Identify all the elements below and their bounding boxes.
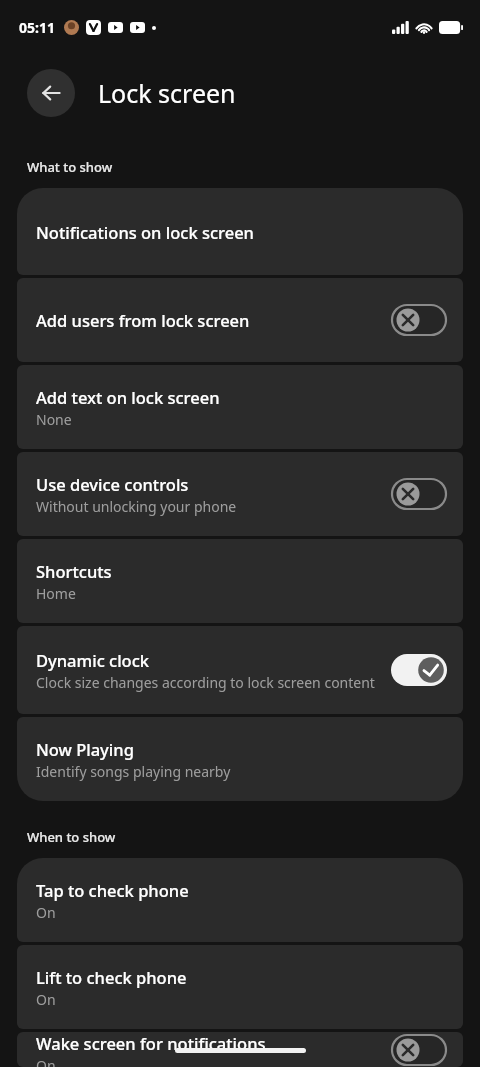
staticText: Home <box>36 584 76 603</box>
staticText: Lock screen <box>98 76 236 110</box>
staticText: Shortcuts <box>36 560 112 582</box>
staticText: Add users from lock screen <box>36 309 250 331</box>
button[interactable]: Use device controls <box>17 452 463 536</box>
button[interactable]: Add users from lock screen <box>17 278 463 362</box>
staticText: What to show <box>27 158 113 176</box>
staticText: Lift to check phone <box>36 966 187 988</box>
staticText: 05:11 <box>19 18 55 37</box>
button[interactable]: Lift to check phone <box>17 945 463 1029</box>
button[interactable]: Tap to check phone <box>17 858 463 942</box>
button[interactable]: Dynamic clock <box>17 626 463 714</box>
button[interactable]: Wake screen for notifications <box>17 1032 463 1067</box>
staticText: Use device controls <box>36 473 189 495</box>
staticText: On <box>36 990 56 1009</box>
button[interactable]: Add text on lock screen <box>17 365 463 449</box>
staticText: Dynamic clock <box>36 649 149 671</box>
button[interactable]: Shortcuts <box>17 539 463 623</box>
staticText: On <box>36 1056 56 1067</box>
staticText: Notifications on lock screen <box>36 221 254 243</box>
staticText: Tap to check phone <box>36 879 189 901</box>
staticText: Identify songs playing nearby <box>36 762 231 781</box>
button[interactable]: Notifications on lock screen <box>17 188 463 275</box>
staticText: Add text on lock screen <box>36 386 220 408</box>
button[interactable]: Back <box>27 69 75 117</box>
staticText: When to show <box>27 828 116 846</box>
staticText: Clock size changes according to lock scr… <box>36 673 375 692</box>
staticText: Wake screen for notifications <box>36 1032 266 1054</box>
staticText: Without unlocking your phone <box>36 497 237 516</box>
button[interactable]: Now Playing <box>17 717 463 801</box>
staticText: On <box>36 903 56 922</box>
staticText: Now Playing <box>36 738 134 760</box>
staticText: None <box>36 410 72 429</box>
